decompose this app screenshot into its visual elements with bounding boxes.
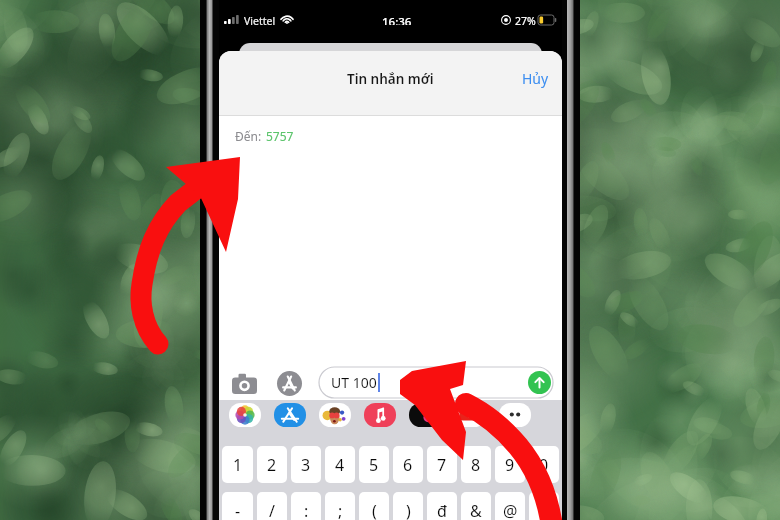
button[interactable]: Memoji [312,397,357,433]
button[interactable]: 0 [529,446,559,483]
staticText: @ [503,500,518,520]
staticText: đ [437,500,447,520]
button[interactable]: : [291,492,321,520]
staticText: 9 [505,454,515,476]
button[interactable]: 7 [427,446,457,483]
button[interactable]: More [492,397,537,433]
staticText: 3 [301,454,311,476]
button[interactable]: 6 [393,446,423,483]
staticText: UT 100 [331,373,377,392]
button[interactable]: 1 [222,446,253,483]
button[interactable]: 4 [325,446,355,483]
staticText: Hủy [522,69,549,88]
button[interactable]: đ [427,492,457,520]
button[interactable]: ) [393,492,423,520]
staticText: 5757 [266,128,294,144]
staticText: 1 [233,454,243,476]
button[interactable]: Send [528,371,551,394]
staticText: / [269,500,275,520]
button[interactable]: Camera [231,371,257,395]
staticText: Tin nhắn mới [347,70,434,88]
staticText: 7 [437,454,447,476]
button[interactable]: Music [357,397,402,433]
button[interactable]: 9 [495,446,525,483]
staticText: ; [338,500,343,520]
button[interactable]: 2 [257,446,287,483]
button[interactable]: Photos [223,397,267,433]
staticText: 27% [515,14,536,25]
staticText: ( [372,500,377,520]
staticText: 0 [539,454,549,476]
button[interactable]: UT 100 [319,367,553,398]
button[interactable]: ( [359,492,389,520]
button[interactable]: 3 [291,446,321,483]
button[interactable]: App Store [276,370,302,396]
staticText: Viettel [244,14,276,25]
button[interactable]: Hủy [509,63,562,94]
staticText: Đến: [235,128,262,144]
button[interactable]: App [402,397,447,433]
button[interactable]: 8 [461,446,491,483]
button[interactable]: " [529,492,559,520]
staticText: 2 [267,454,277,476]
button[interactable]: YouTube [447,397,492,433]
button[interactable]: App Store [267,397,312,433]
staticText: ) [406,500,411,520]
staticText: 6 [403,454,413,476]
button[interactable]: - [222,492,253,520]
staticText: 4 [335,454,345,476]
staticText: 16:36 [382,14,412,25]
button[interactable]: & [461,492,491,520]
button[interactable]: @ [495,492,525,520]
button[interactable]: ; [325,492,355,520]
button[interactable]: Đến: [219,116,562,158]
staticText: 5 [369,454,379,476]
staticText: & [470,500,482,520]
button[interactable]: 5 [359,446,389,483]
button[interactable]: / [257,492,287,520]
staticText: - [235,500,241,520]
staticText: 8 [471,454,481,476]
staticText: : [304,500,309,520]
